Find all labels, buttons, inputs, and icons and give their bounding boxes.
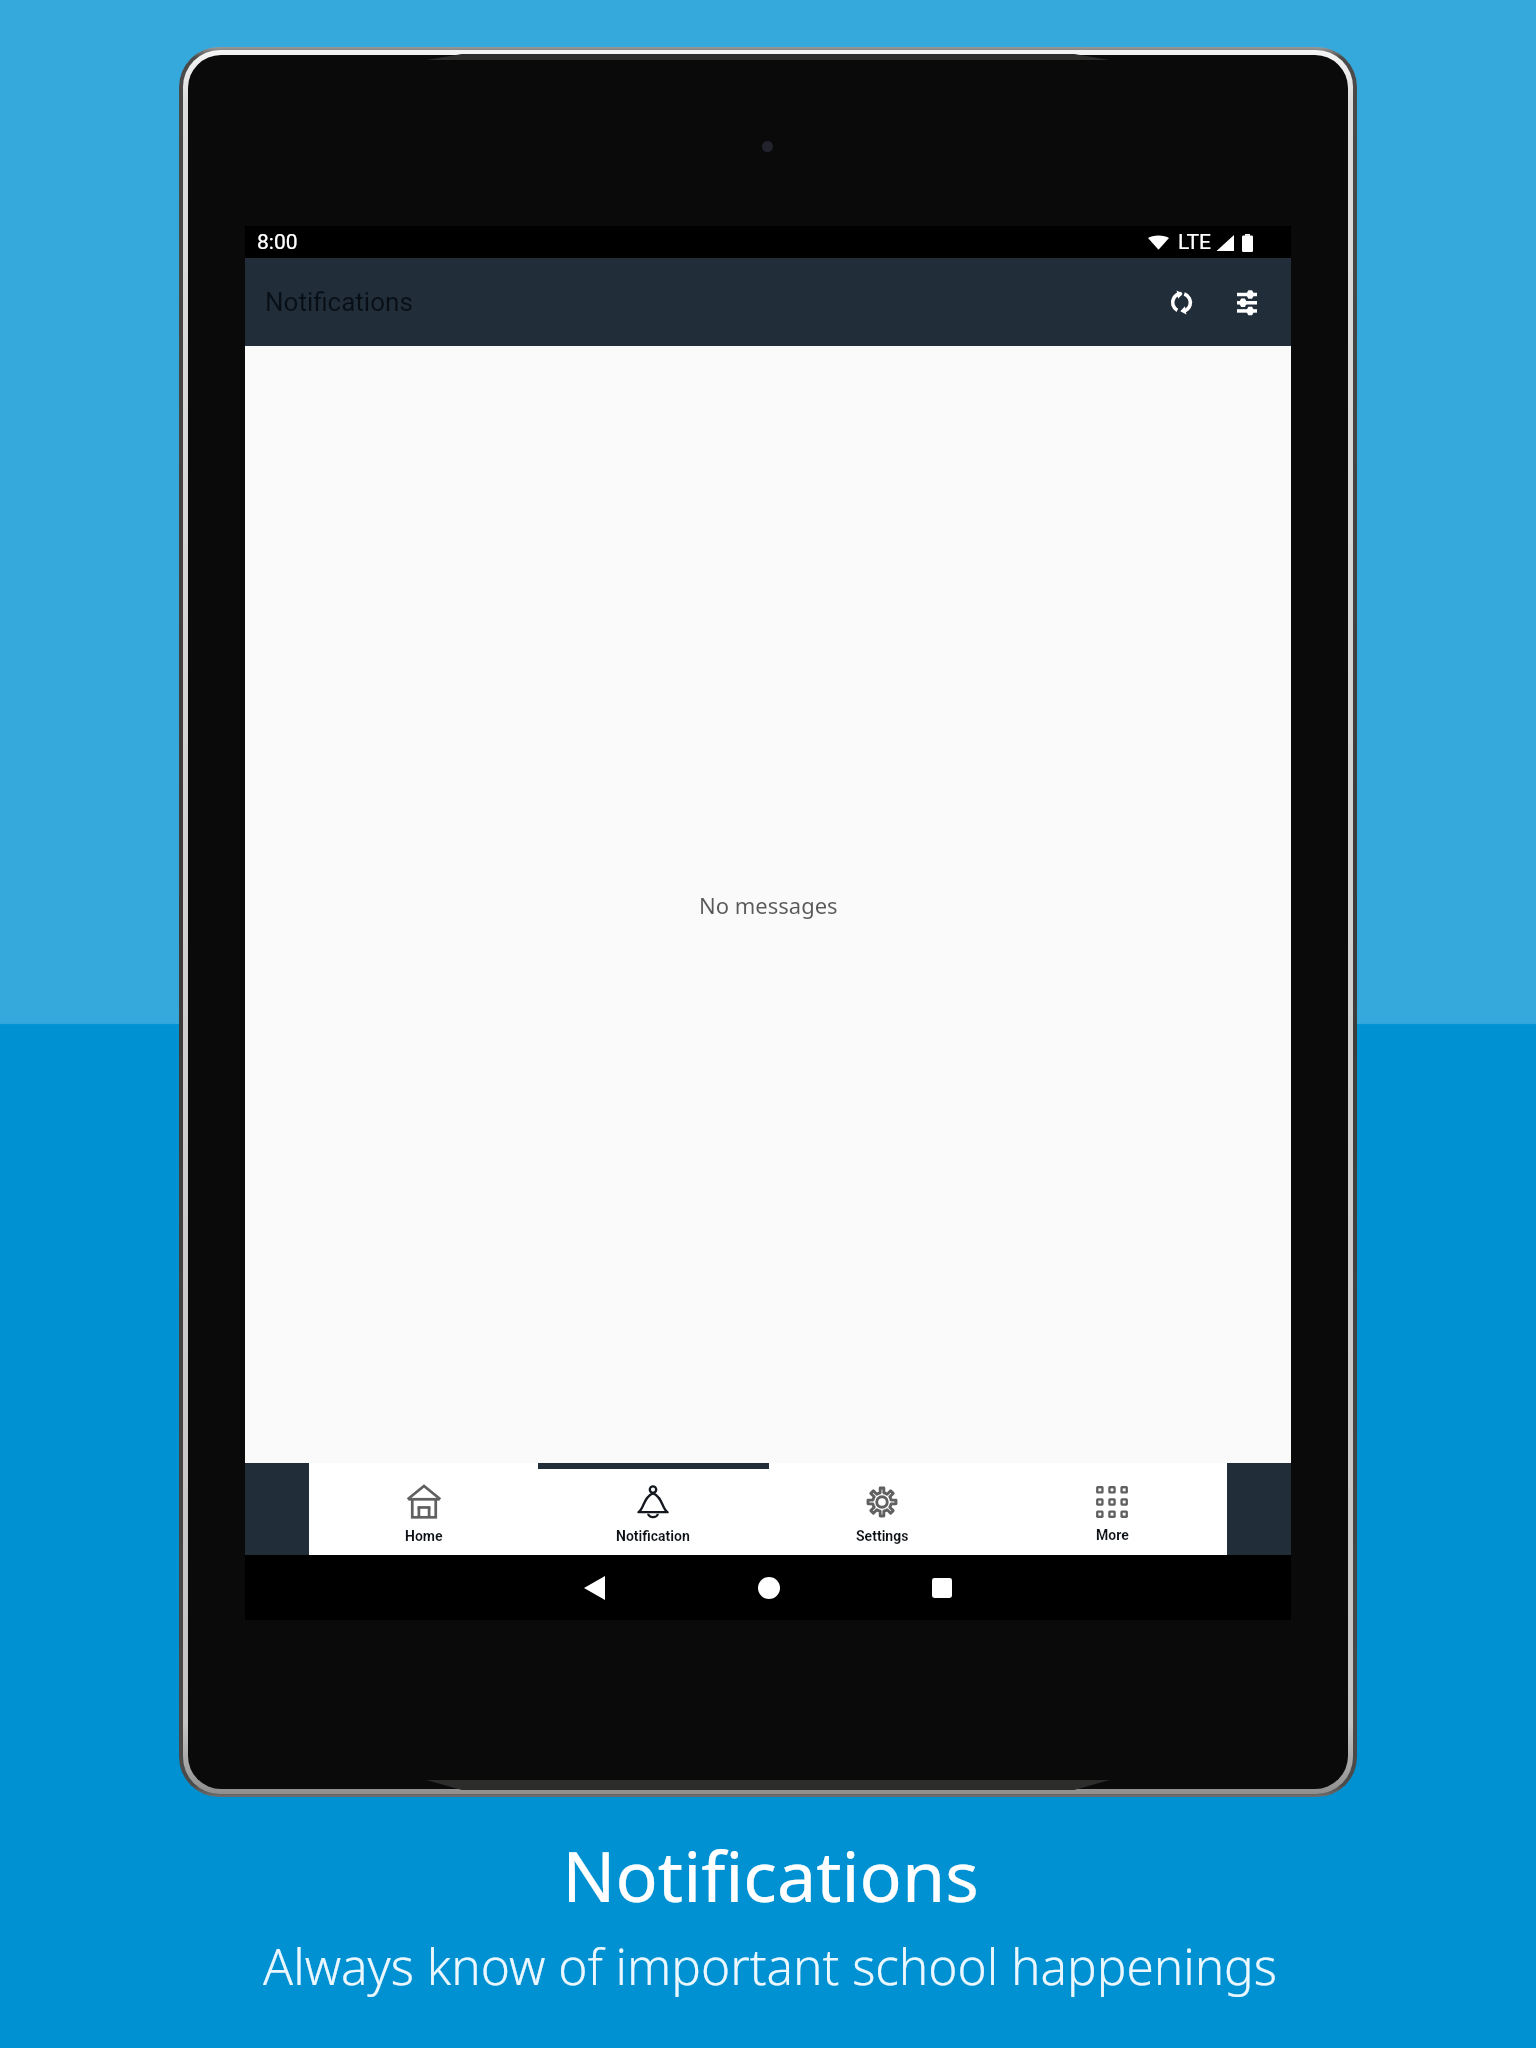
button[interactable]: More — [997, 1463, 1227, 1555]
button[interactable]: Filter — [1217, 272, 1277, 332]
staticText: Home — [405, 1528, 443, 1544]
staticText: Notification — [616, 1528, 690, 1544]
button[interactable]: Refresh — [1151, 272, 1211, 332]
button[interactable]: Back — [571, 1565, 617, 1611]
staticText: No messages — [699, 890, 838, 920]
staticText: 8:00 — [257, 230, 298, 255]
button[interactable]: Recents — [919, 1565, 965, 1611]
staticText: Notifications — [562, 1827, 979, 1922]
button[interactable]: Settings — [767, 1463, 997, 1555]
button[interactable]: Notification — [538, 1463, 767, 1555]
staticText: LTE — [1178, 230, 1211, 255]
staticText: Notifications — [265, 287, 413, 317]
staticText: Always know of important school happenin… — [263, 1932, 1277, 1999]
staticText: Settings — [856, 1528, 909, 1544]
button[interactable]: Home — [746, 1565, 792, 1611]
button[interactable]: Home — [309, 1463, 538, 1555]
staticText: More — [1096, 1527, 1129, 1543]
